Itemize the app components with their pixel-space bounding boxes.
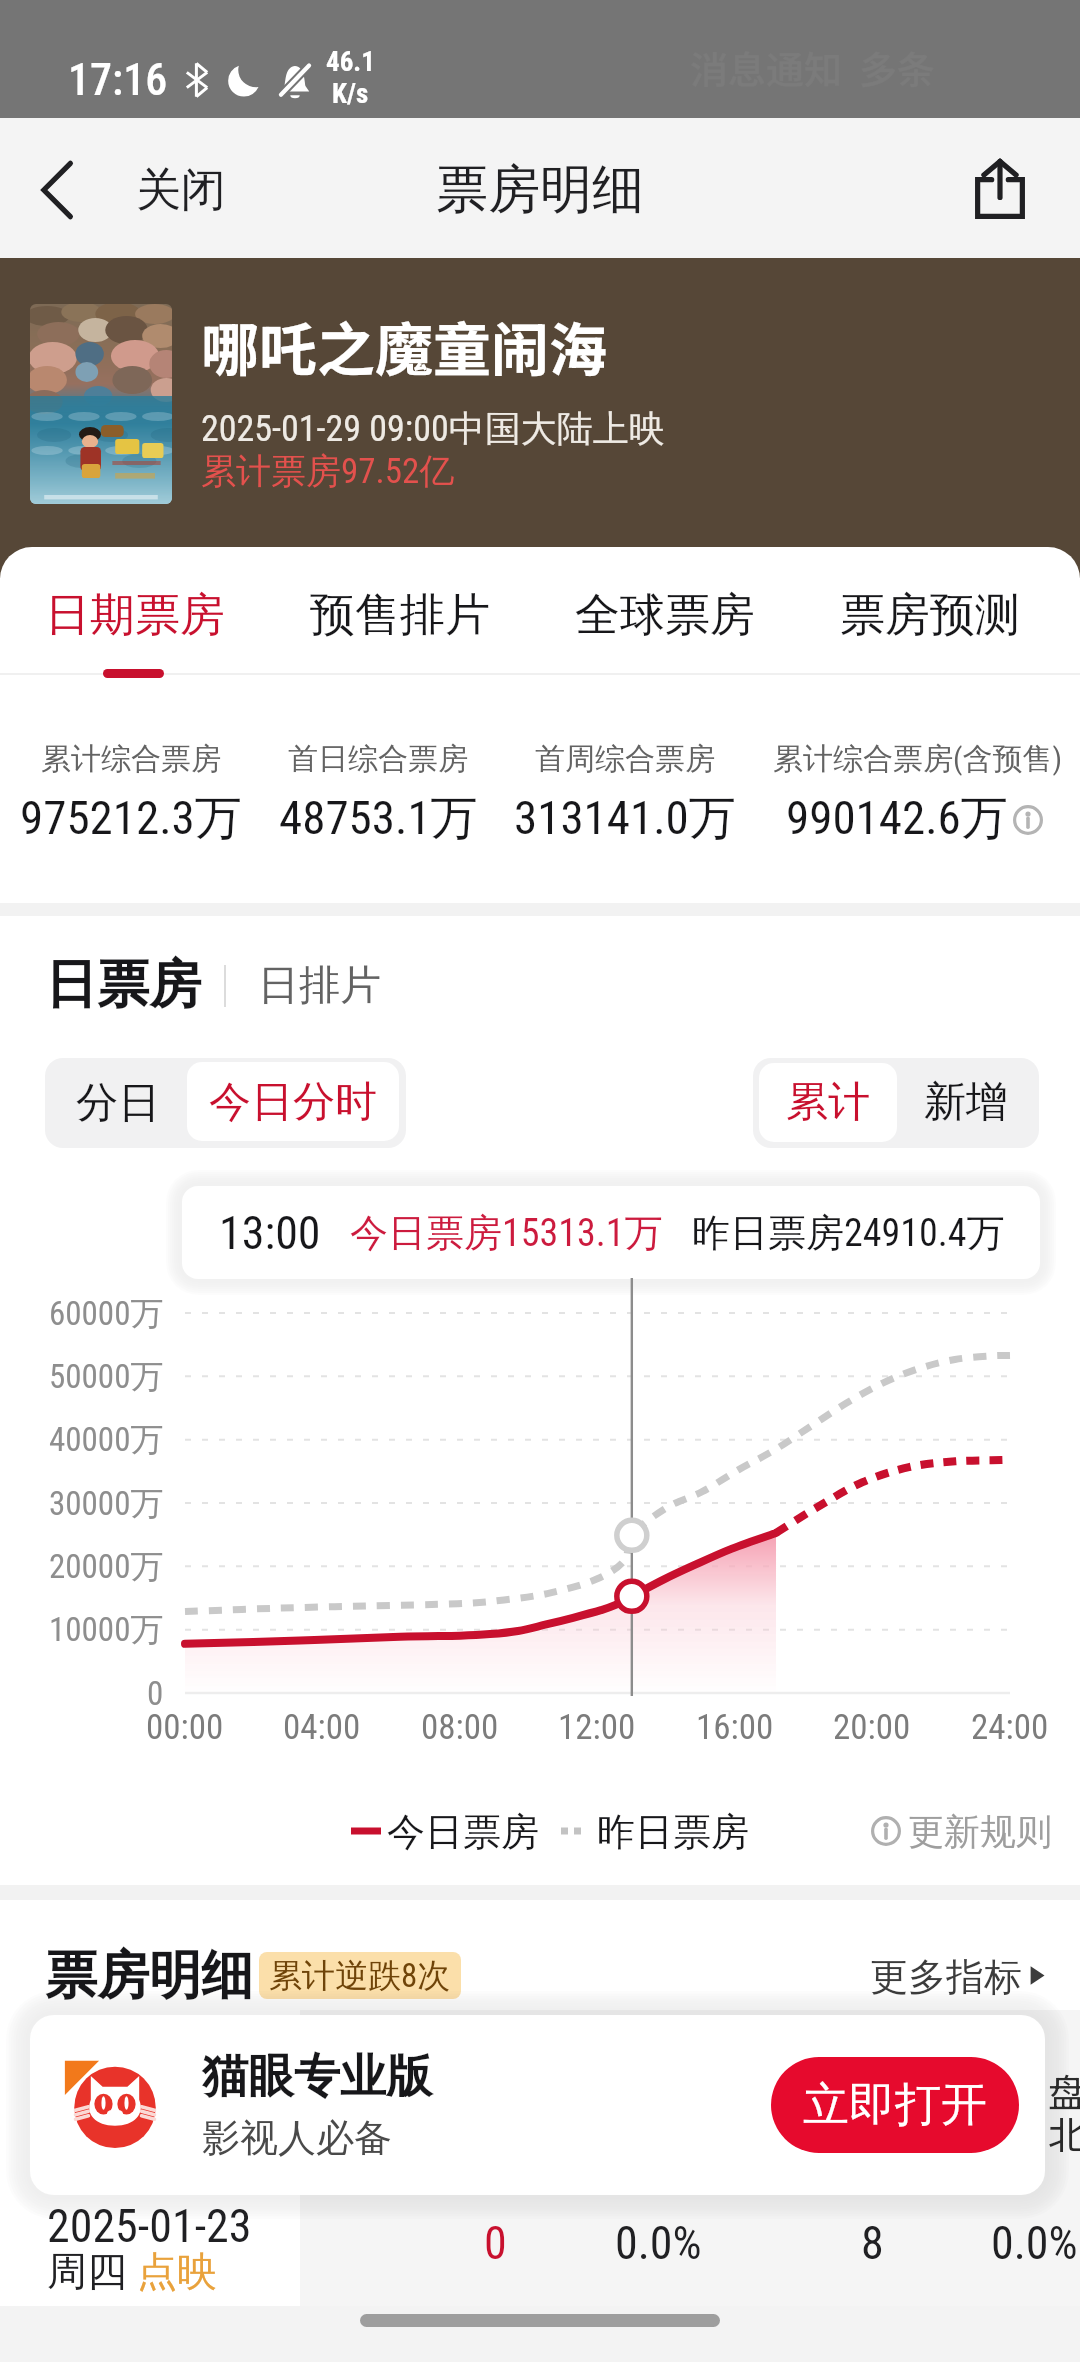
staticText: 周四 [47,2246,127,2296]
staticText: 累计 [786,1076,870,1129]
staticText: 313141.0万 [514,789,736,848]
staticText: 立即打开 [803,2076,987,2134]
staticText: 日排片 [258,960,381,1012]
staticText: 20:00 [833,1707,911,1748]
staticText: 点映 [137,2246,217,2296]
staticText: 关闭 [136,162,226,219]
staticText: 0.0% [615,2216,702,2270]
staticText: 今日分时 [209,1076,377,1129]
staticText: 0 [484,2216,507,2270]
staticText: 猫眼专业版 [202,2048,432,2106]
staticText: 分日 [76,1077,160,1130]
staticText: 昨日票房24910.4万 [692,1209,1005,1257]
staticText: 全球票房 [575,587,755,644]
button[interactable]: 猫眼专业版 [30,2015,1045,2195]
button[interactable] [533,547,797,677]
staticText: 12:00 [558,1707,636,1748]
staticText: 首周综合票房 [535,740,715,778]
staticText: 票房预测 [840,587,1020,644]
staticText: 票房明细 [45,1943,253,2009]
staticText: 盘 [1048,2063,1080,2118]
staticText: 50000万 [49,1356,164,1398]
staticText: 16:00 [696,1707,774,1748]
button[interactable]: Share [940,118,1060,258]
button[interactable] [897,1063,1035,1142]
staticText: 日期票房 [45,587,225,644]
staticText: 13:00 [219,1206,321,1260]
button[interactable] [759,1063,897,1142]
staticText: 0.0% [991,2216,1078,2270]
staticText: 累计逆跌8次 [269,1955,451,1997]
staticText: 影视人必备 [202,2114,392,2162]
button[interactable] [187,1062,399,1141]
staticText: 08:00 [421,1707,499,1748]
staticText: 990142.6万 [786,789,1008,848]
staticText: 10000万 [49,1609,164,1651]
staticText: 哪吒之魔童闹海 [201,304,608,388]
button[interactable] [798,547,1062,677]
staticText: 2025-01-23 [47,2199,252,2253]
staticText: 预售排片 [310,587,490,644]
staticText: 票房明细 [436,157,644,223]
staticText: 60000万 [49,1293,164,1335]
staticText: 2025-01-29 09:00中国大陆上映 [201,406,665,451]
staticText: 975212.3万 [20,789,242,848]
staticText: 46.1 [326,46,375,78]
button[interactable]: 立即打开 [771,2057,1019,2153]
staticText: 24:00 [971,1707,1049,1748]
staticText: 04:00 [283,1707,361,1748]
button[interactable] [3,547,267,677]
staticText: 更新规则 [908,1809,1052,1854]
staticText: 累计综合票房(含预售) [773,740,1062,778]
staticText: 40000万 [49,1419,164,1461]
staticText: 8 [861,2216,884,2270]
staticText: 0 [147,1674,164,1713]
staticText: 更多指标 [870,1953,1022,2001]
staticText: 累计票房97.52亿 [201,449,455,493]
staticText: 累计综合票房 [41,740,221,778]
staticText: 新增 [924,1076,1008,1129]
staticText: 今日票房15313.1万 [350,1209,663,1257]
staticText: 日票房 [45,952,201,1018]
staticText: K/s [332,78,369,110]
staticText: 今日票房 [387,1808,539,1856]
button[interactable] [268,547,532,677]
staticText: 48753.1万 [279,789,478,848]
staticText: 00:00 [146,1707,224,1748]
staticText: 首日综合票房 [288,740,468,778]
staticText: 30000万 [49,1483,164,1525]
button[interactable] [860,1791,1045,1871]
button[interactable] [49,1062,187,1144]
staticText: 昨日票房 [597,1808,749,1856]
button[interactable]: Back [20,118,240,258]
button[interactable] [850,1940,1045,2012]
staticText: 北 [1048,2105,1080,2160]
staticText: 20000万 [49,1546,164,1588]
staticText: 17:16 [68,54,168,106]
